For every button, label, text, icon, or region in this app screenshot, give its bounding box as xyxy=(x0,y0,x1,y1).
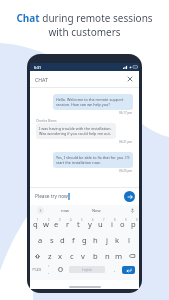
button[interactable]: Emoji xyxy=(55,264,65,275)
staticText: i xyxy=(111,219,113,229)
button[interactable]: a xyxy=(35,232,46,248)
staticText: Hello. Welcome to the remote support ses… xyxy=(56,97,131,107)
button[interactable]: Voice input xyxy=(126,205,139,216)
button[interactable]: 7 xyxy=(95,216,106,232)
button[interactable]: ?123 xyxy=(31,264,43,275)
staticText: ° xyxy=(48,265,50,269)
staticText: 0 xyxy=(136,218,138,222)
staticText: f xyxy=(72,235,75,245)
staticText: now xyxy=(61,208,69,213)
staticText: x xyxy=(58,251,63,261)
button[interactable]: 8 xyxy=(106,216,117,232)
staticText: b xyxy=(93,251,98,261)
staticText: u xyxy=(98,219,103,229)
staticText: m xyxy=(115,251,123,261)
staticText: 2 xyxy=(48,218,50,222)
staticText: g xyxy=(82,235,87,245)
staticText: 9 xyxy=(125,218,127,222)
staticText: e xyxy=(54,219,59,229)
button[interactable]: Space xyxy=(69,266,105,273)
staticText: w xyxy=(43,219,49,229)
staticText: d xyxy=(60,235,65,245)
button[interactable]: n xyxy=(101,248,113,264)
button[interactable]: Close chat xyxy=(125,74,135,84)
staticText: t xyxy=(77,219,80,229)
staticText: o xyxy=(120,219,125,229)
staticText: a xyxy=(38,235,43,245)
staticText: 06:17 pm xyxy=(119,111,133,115)
staticText: j xyxy=(106,235,108,245)
staticText: 3 xyxy=(59,218,61,222)
staticText: n xyxy=(105,251,110,261)
staticText: 8 xyxy=(114,218,116,222)
button[interactable]: v xyxy=(77,248,89,264)
staticText: Yes, I should be able to fix that for yo… xyxy=(56,155,131,165)
staticText: 6 xyxy=(92,218,94,222)
button[interactable]: 5 xyxy=(73,216,84,232)
staticText: 06:25 pm xyxy=(119,169,133,173)
staticText: English xyxy=(82,268,93,272)
button[interactable]: Hello. Welcome to the remote support ses… xyxy=(53,94,133,110)
staticText: Now xyxy=(92,208,101,213)
staticText: with customers xyxy=(48,25,121,39)
button[interactable]: g xyxy=(79,232,90,248)
button[interactable]: d xyxy=(57,232,68,248)
button[interactable]: now xyxy=(50,205,80,216)
button[interactable]: Send message xyxy=(124,191,135,202)
button[interactable]: l xyxy=(123,232,134,248)
button[interactable]: c xyxy=(66,248,77,264)
button[interactable]: j xyxy=(101,232,112,248)
button[interactable]: 4 xyxy=(62,216,73,232)
staticText: 1 xyxy=(37,218,39,222)
staticText: k xyxy=(115,235,120,245)
button[interactable]: m xyxy=(113,248,125,264)
staticText: 06:21 pm xyxy=(119,140,133,144)
staticText: . xyxy=(114,267,116,273)
staticText: , xyxy=(48,269,50,274)
staticText: CHAT xyxy=(35,76,48,83)
staticText: Chat during remote sessions xyxy=(16,11,153,25)
button[interactable]: More suggestions xyxy=(30,205,50,216)
staticText: s xyxy=(50,235,54,245)
staticText: Please try now xyxy=(35,193,68,200)
button[interactable]: z xyxy=(44,248,55,264)
button[interactable]: f xyxy=(68,232,79,248)
button[interactable]: I was having trouble with the installati… xyxy=(36,123,116,139)
staticText: l xyxy=(128,235,130,245)
button[interactable]: Backspace xyxy=(125,248,139,264)
button[interactable]: Yes, I should be able to fix that for yo… xyxy=(53,152,133,168)
staticText: I was having trouble with the installati… xyxy=(39,126,114,136)
staticText: q xyxy=(33,219,38,229)
staticText: p xyxy=(131,219,136,229)
button[interactable]: h xyxy=(90,232,101,248)
staticText: z xyxy=(48,251,52,261)
staticText: 6:31 xyxy=(34,65,42,70)
button[interactable]: b xyxy=(89,248,101,264)
staticText: Charles Binns xyxy=(36,119,57,123)
staticText: 4 xyxy=(70,218,72,222)
staticText: v xyxy=(81,251,85,261)
staticText: 7 xyxy=(103,218,105,222)
button[interactable]: 0 xyxy=(128,216,139,232)
button[interactable]: k xyxy=(112,232,123,248)
button[interactable]: 6 xyxy=(84,216,95,232)
button[interactable]: 1 xyxy=(30,216,40,232)
staticText: y xyxy=(88,219,92,229)
button[interactable]: 3 xyxy=(51,216,62,232)
button[interactable]: 9 xyxy=(117,216,128,232)
button[interactable]: Enter xyxy=(122,266,135,274)
staticText: c xyxy=(70,251,74,261)
staticText: 5 xyxy=(81,218,83,222)
button[interactable]: Period xyxy=(110,264,119,275)
staticText: h xyxy=(93,235,98,245)
button[interactable]: Now xyxy=(80,205,112,216)
staticText: r xyxy=(66,219,70,229)
button[interactable]: s xyxy=(46,232,57,248)
button[interactable]: Shift xyxy=(30,248,44,264)
button[interactable]: Comma xyxy=(44,264,54,275)
staticText: ?123 xyxy=(32,267,42,273)
button[interactable]: x xyxy=(55,248,66,264)
button[interactable]: 2 xyxy=(40,216,51,232)
